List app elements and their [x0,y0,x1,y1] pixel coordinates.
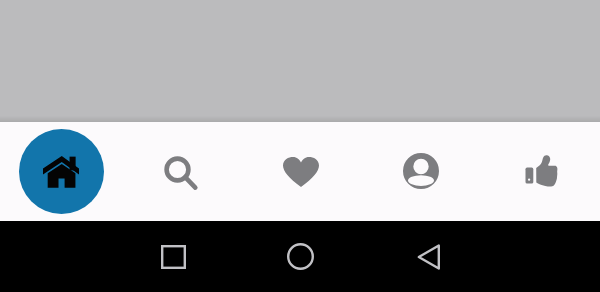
button[interactable]: Recents [149,221,197,292]
button[interactable]: Back [404,221,452,292]
button[interactable]: Likes [480,122,600,221]
button[interactable]: Favorites [240,122,360,221]
button[interactable]: Account [360,122,480,221]
button[interactable]: Search [120,122,240,221]
button[interactable]: Home [276,221,324,292]
button[interactable]: Home [0,122,120,221]
